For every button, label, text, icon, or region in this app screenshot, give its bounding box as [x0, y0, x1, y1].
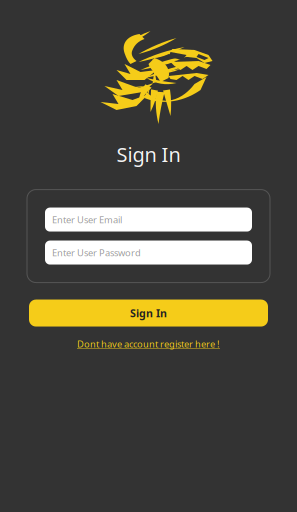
- staticText: Dont have account register here !: [77, 338, 220, 350]
- staticText: Sign In: [130, 306, 167, 320]
- staticText: Enter User Password: [52, 246, 141, 259]
- staticText: Enter User Email: [52, 213, 122, 226]
- button[interactable]: Sign In: [29, 300, 268, 327]
- staticText: Sign In: [116, 141, 180, 168]
- button[interactable]: Dont have account register here !: [77, 338, 220, 350]
